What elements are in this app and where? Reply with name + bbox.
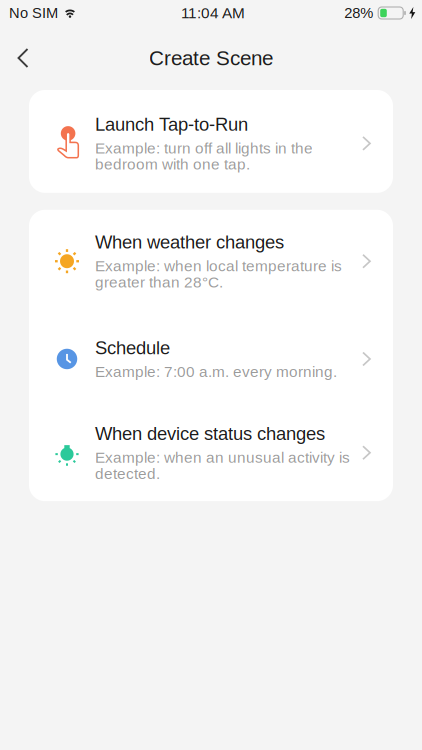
button[interactable]: Launch Tap-to-Run [29,90,393,193]
staticText: Create Scene [149,46,273,70]
staticText: When device status changes [95,423,325,444]
staticText: 11:04 AM [181,4,245,21]
button[interactable]: Schedule [29,313,393,401]
staticText: Example: turn off all lights in the bedr… [95,140,313,173]
staticText: Schedule [95,338,170,358]
staticText: Launch Tap-to-Run [95,114,248,135]
staticText: 28% [344,5,373,21]
staticText: Example: when local temperature is great… [95,257,342,291]
button[interactable]: When weather changes [29,210,393,313]
staticText: Example: when an unusual activity is det… [95,449,350,482]
staticText: Example: 7:00 a.m. every morning. [95,363,337,380]
button[interactable]: When device status changes [29,401,393,501]
staticText: When weather changes [95,232,284,252]
button[interactable]: Back [0,36,46,80]
staticText: No SIM [9,5,58,21]
